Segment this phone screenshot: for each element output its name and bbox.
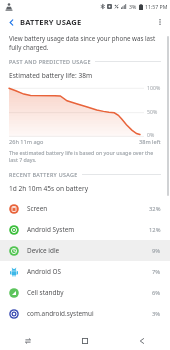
button[interactable]: Android OS [0,261,170,282]
staticText: 100% [147,84,161,91]
button[interactable]: More options [153,15,167,29]
staticText: 26h 11m ago [9,138,44,146]
button[interactable]: Recents [0,332,56,350]
staticText: com.android.systemui [27,309,152,318]
staticText: The estimated battery life is based on y… [9,149,161,164]
staticText: 50% [147,108,158,115]
staticText: Screen [27,204,149,213]
button[interactable]: Screen [0,198,170,219]
staticText: 3% [129,3,137,10]
staticText: 38m left [139,138,161,146]
staticText: 9% [152,247,161,255]
button[interactable]: Device idle [0,240,170,261]
button[interactable]: Home [56,332,113,350]
staticText: BATTERY USAGE [20,17,82,27]
staticText: View battery usage data since your phone… [9,34,161,52]
staticText: Android System [27,225,149,234]
staticText: 1d 2h 10m 45s on battery [9,184,89,193]
staticText: Estimated battery life: 38m [9,71,93,80]
button[interactable]: Back [4,15,18,29]
staticText: 32% [149,205,161,213]
staticText: 0% [147,131,155,138]
staticText: 7% [152,268,161,276]
button[interactable]: Cell standby [0,282,170,303]
button[interactable]: Back [113,332,170,350]
button[interactable]: Android System [0,219,170,240]
staticText: RECENT BATTERY USAGE [9,171,78,178]
staticText: Device idle [27,246,152,255]
staticText: Android OS [27,267,152,276]
staticText: PAST AND PREDICTED USAGE [9,58,91,65]
staticText: 6% [152,289,161,297]
button[interactable]: com.android.systemui [0,303,170,324]
staticText: 12% [149,226,161,234]
staticText: Cell standby [27,288,152,297]
staticText: 3% [152,310,161,318]
staticText: 11:57 PM [145,3,168,10]
